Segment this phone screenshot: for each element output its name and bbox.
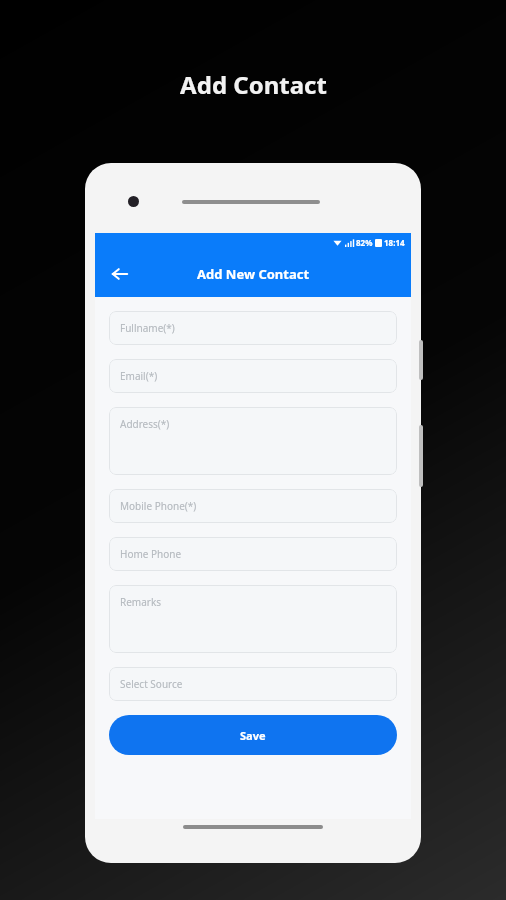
staticText: Select Source: [120, 677, 183, 691]
staticText: Fullname(*): [120, 321, 175, 335]
staticText: Save: [240, 728, 266, 743]
staticText: Email(*): [120, 369, 158, 383]
staticText: 82%: [356, 237, 373, 248]
staticText: 18:14: [384, 237, 405, 248]
staticText: Add New Contact: [197, 265, 310, 283]
staticText: Home Phone: [120, 547, 182, 561]
staticText: Remarks: [120, 595, 162, 609]
staticText: Address(*): [120, 417, 170, 431]
button[interactable]: Address(*): [109, 407, 397, 475]
button[interactable]: Back: [105, 259, 135, 289]
button[interactable]: Save: [109, 715, 397, 755]
button[interactable]: Remarks: [109, 585, 397, 653]
button[interactable]: Mobile Phone(*): [109, 489, 397, 523]
staticText: Mobile Phone(*): [120, 499, 197, 513]
staticText: Add Contact: [180, 68, 327, 101]
button[interactable]: Home Phone: [109, 537, 397, 571]
button[interactable]: Select Source: [109, 667, 397, 701]
button[interactable]: Email(*): [109, 359, 397, 393]
button[interactable]: Fullname(*): [109, 311, 397, 345]
